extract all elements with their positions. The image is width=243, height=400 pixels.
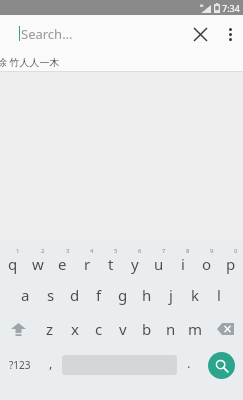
button[interactable]: Clear search <box>183 17 217 51</box>
staticText: 4 <box>90 247 94 255</box>
staticText: h <box>142 285 152 305</box>
button[interactable]: a <box>13 278 38 312</box>
staticText: l <box>217 285 221 305</box>
staticText: s <box>47 285 55 305</box>
button[interactable]: Search <box>208 352 235 379</box>
button[interactable]: ?123 <box>0 346 39 384</box>
staticText: 0 <box>234 247 238 255</box>
button[interactable]: m <box>183 312 207 346</box>
staticText: ?123 <box>9 358 31 372</box>
button[interactable]: j <box>159 278 183 312</box>
staticText: i <box>181 254 185 274</box>
staticText: 9 <box>210 247 214 255</box>
button[interactable]: n <box>159 312 183 346</box>
button[interactable]: . <box>177 346 200 384</box>
staticText: w <box>32 254 44 274</box>
staticText: Search… <box>21 25 73 43</box>
button[interactable]: 4 <box>75 244 99 278</box>
button[interactable]: b <box>135 312 159 346</box>
button[interactable]: Backspace <box>207 312 243 346</box>
button[interactable]: 6 <box>123 244 147 278</box>
button[interactable]: 2 <box>25 244 50 278</box>
button[interactable]: c <box>87 312 111 346</box>
button[interactable]: k <box>183 278 207 312</box>
staticText: c <box>95 319 103 339</box>
button[interactable]: f <box>87 278 111 312</box>
staticText: 6 <box>138 247 142 255</box>
staticText: g <box>118 285 128 305</box>
staticText: e <box>58 254 67 274</box>
staticText: v <box>119 319 127 339</box>
staticText: x <box>71 319 79 339</box>
button[interactable]: 8 <box>171 244 195 278</box>
staticText: 7:34 <box>222 2 240 14</box>
button[interactable]: d <box>63 278 87 312</box>
button[interactable]: Search… <box>21 25 73 43</box>
staticText: y <box>131 254 139 274</box>
staticText: b <box>142 319 152 339</box>
staticText: q <box>8 254 18 274</box>
staticText: d <box>70 285 80 305</box>
button[interactable]: 徐 竹人人一木 <box>0 52 243 72</box>
staticText: o <box>202 254 212 274</box>
staticText: z <box>46 319 54 339</box>
staticText: p <box>226 254 236 274</box>
button[interactable]: More options <box>217 21 243 47</box>
staticText: , <box>49 354 53 372</box>
button[interactable]: 7 <box>147 244 171 278</box>
staticText: t <box>108 254 114 274</box>
staticText: m <box>188 319 203 339</box>
button[interactable]: , <box>39 346 62 384</box>
staticText: 徐 竹人人一木 <box>0 55 60 69</box>
staticText: 5 <box>114 247 118 255</box>
staticText: f <box>96 285 102 305</box>
staticText: r <box>84 254 91 274</box>
button[interactable]: 5 <box>99 244 123 278</box>
button[interactable]: 3 <box>50 244 75 278</box>
button[interactable]: s <box>38 278 63 312</box>
button[interactable]: g <box>111 278 135 312</box>
staticText: a <box>21 285 30 305</box>
button[interactable]: x <box>62 312 87 346</box>
staticText: n <box>166 319 176 339</box>
staticText: 7 <box>162 247 166 255</box>
staticText: j <box>169 285 173 305</box>
button[interactable]: l <box>207 278 231 312</box>
staticText: . <box>187 354 191 372</box>
staticText: k <box>191 285 200 305</box>
button[interactable]: v <box>111 312 135 346</box>
staticText: 2 <box>41 247 45 255</box>
staticText: 3 <box>66 247 70 255</box>
button[interactable]: z <box>37 312 62 346</box>
button[interactable]: 9 <box>195 244 219 278</box>
staticText: 8 <box>186 247 190 255</box>
staticText: u <box>154 254 164 274</box>
staticText: 1 <box>16 247 20 255</box>
button[interactable]: 0 <box>219 244 243 278</box>
button[interactable]: Shift <box>0 312 37 346</box>
button[interactable]: 1 <box>0 244 25 278</box>
button[interactable]: h <box>135 278 159 312</box>
